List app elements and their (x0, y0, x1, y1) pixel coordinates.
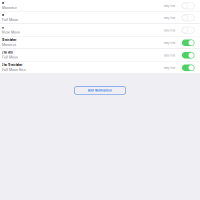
staticText: Moonrise (2, 5, 17, 10)
staticText: at (2, 1, 4, 5)
button[interactable]: 30 min before (0, 36, 200, 49)
staticText: every time (164, 66, 175, 70)
staticText: 2 hrs 10 min before (2, 63, 22, 67)
staticText: Moonset (2, 42, 16, 47)
staticText: at (2, 13, 4, 17)
staticText: every time (164, 4, 175, 8)
button[interactable]: at (0, 24, 200, 36)
button[interactable]: Add Notification (74, 86, 125, 94)
staticText: Full Moon Rise (2, 67, 26, 72)
button[interactable]: 2 hrs after (0, 49, 200, 61)
button[interactable]: at (0, 0, 200, 11)
staticText: 30 min before (2, 38, 16, 42)
staticText: Full Moon (2, 17, 18, 22)
staticText: 2 hrs after (2, 51, 13, 54)
button[interactable]: at (0, 11, 200, 24)
staticText: every time (164, 16, 175, 20)
staticText: at (2, 26, 4, 29)
staticText: every time (164, 28, 175, 32)
staticText: every time (164, 53, 175, 57)
staticText: Full Moon (2, 54, 18, 60)
staticText: New Moon (2, 29, 20, 35)
button[interactable]: 2 hrs 10 min before (0, 61, 200, 74)
staticText: every time (164, 41, 175, 45)
staticText: Add Notification (88, 88, 112, 93)
